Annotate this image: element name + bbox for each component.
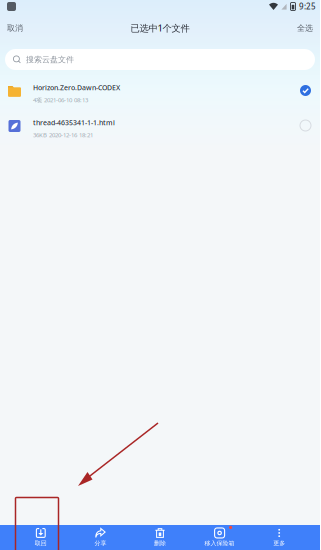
staticText: 分享 [94,539,106,547]
staticText: 搜索云盘文件 [26,54,74,65]
button[interactable]: 更多 [249,525,309,550]
staticText: 取消 [7,23,23,33]
button[interactable]: Horizon.Zero.Dawn-CODEX [0,73,320,108]
button[interactable]: 搜索云盘文件 [5,49,315,70]
button[interactable]: thread-4635341-1-1.html [0,108,320,143]
staticText: 4项 2021-06-10 08:13 [33,96,88,104]
staticText: 全选 [297,23,313,33]
staticText: 移入保险箱 [205,539,235,547]
staticText: 删除 [154,539,166,547]
button[interactable]: 取回 [11,525,71,550]
button[interactable]: 全选 [290,15,320,41]
staticText: Horizon.Zero.Dawn-CODEX [33,83,120,92]
staticText: 已选中1个文件 [130,22,189,34]
button[interactable]: 取消 [0,15,30,41]
staticText: thread-4635341-1-1.html [33,118,115,127]
button[interactable]: 分享 [71,525,130,550]
button[interactable]: 移入保险箱 [190,525,249,550]
button[interactable]: 删除 [130,525,190,550]
staticText: 9:25 [299,1,316,12]
staticText: 36KB 2020-12-16 18:21 [33,131,93,139]
staticText: 取回 [35,539,47,547]
staticText: 更多 [273,539,285,547]
